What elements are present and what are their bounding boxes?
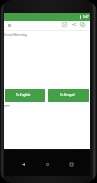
staticText: 8:47 [83,15,89,19]
staticText: To English [16,93,31,97]
button[interactable]: Recent apps [67,160,76,169]
button[interactable]: Clear text [60,20,69,29]
staticText: To Bengali [60,93,75,97]
staticText: Good Morning [4,32,27,37]
button[interactable]: Back [19,160,28,169]
button[interactable]: Home [43,160,52,169]
button[interactable]: Share [69,20,78,29]
button[interactable]: To Bengali [48,89,89,102]
staticText: সুপ্রভাত [4,105,10,108]
button[interactable]: To English [5,89,45,102]
button[interactable]: Open navigation drawer [5,21,14,30]
button[interactable]: Copy [78,20,87,29]
